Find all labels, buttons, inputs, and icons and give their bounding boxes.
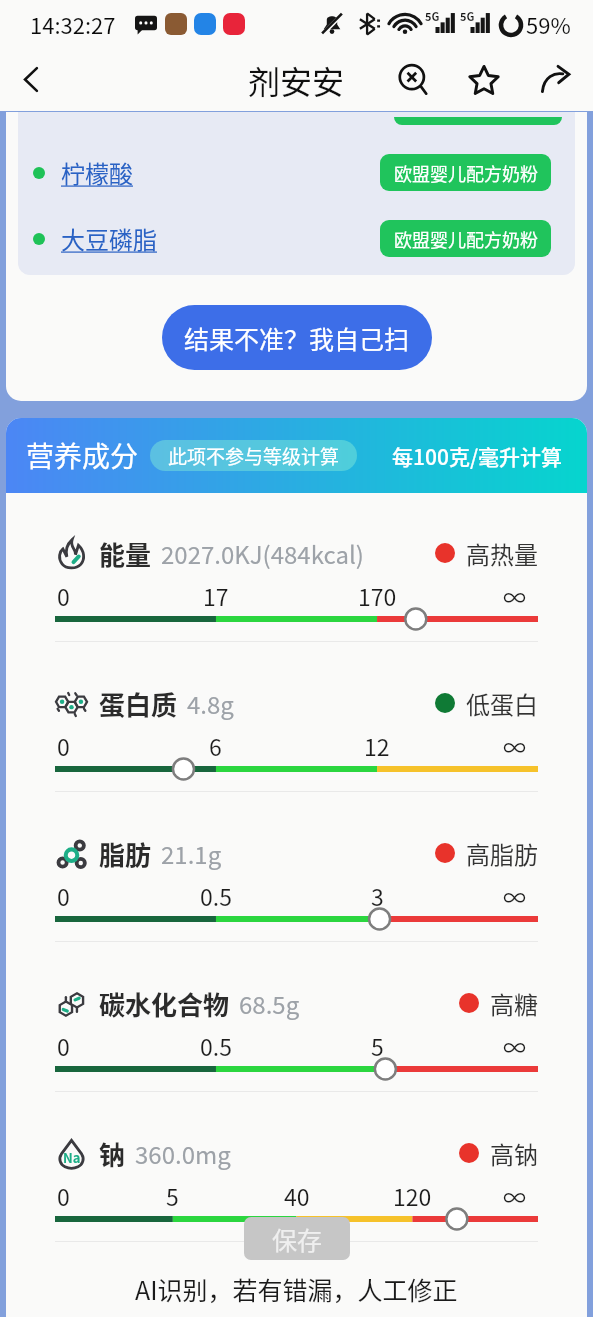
staticText: AI识别，若有错漏，人工修正 xyxy=(135,1271,458,1307)
staticText: 脂肪 xyxy=(99,835,152,871)
staticText: 营养成分 xyxy=(26,435,139,476)
staticText: 此项不参与等级计算 xyxy=(168,442,340,470)
staticText: 68.5g xyxy=(239,986,300,1021)
staticText: 结果不准？我自己扫 xyxy=(184,320,410,356)
staticText: 0 xyxy=(57,1029,70,1062)
button[interactable]: 欧盟婴儿配方奶粉 xyxy=(380,220,551,257)
staticText: 每100克/毫升计算 xyxy=(392,441,563,471)
staticText: 蛋白质 xyxy=(99,685,178,721)
staticText: 能量 xyxy=(99,535,152,571)
staticText: 120 xyxy=(393,1179,432,1212)
staticText: 4.8g xyxy=(187,686,234,721)
staticText: 碳水化合物 xyxy=(99,985,230,1021)
staticText: 40 xyxy=(284,1179,310,1212)
button[interactable]: Back xyxy=(0,48,63,111)
staticText: 欧盟婴儿配方奶粉 xyxy=(394,160,538,186)
staticText: 欧盟婴儿配方奶粉 xyxy=(394,226,538,252)
staticText: 柠檬酸 xyxy=(61,155,133,190)
staticText: 360.0mg xyxy=(135,1136,231,1171)
staticText: 5G xyxy=(460,8,475,24)
staticText: 0 xyxy=(57,1179,70,1212)
staticText: 59% xyxy=(526,8,571,40)
staticText: 12 xyxy=(364,729,390,762)
staticText: 高脂肪 xyxy=(466,836,538,871)
staticText: 5G xyxy=(425,8,440,24)
staticText: 0 xyxy=(57,729,70,762)
button[interactable]: Favorite xyxy=(455,51,513,109)
staticText: 14:32:27 xyxy=(30,8,116,40)
staticText: 6 xyxy=(209,729,222,762)
staticText: 大豆磷脂 xyxy=(61,221,157,256)
staticText: 170 xyxy=(358,579,397,612)
staticText: 0 xyxy=(57,879,70,912)
staticText: 0 xyxy=(57,579,70,612)
staticText: 21.1g xyxy=(161,836,222,871)
staticText: 钠 xyxy=(99,1135,126,1171)
staticText: 5 xyxy=(166,1179,179,1212)
staticText: 3 xyxy=(371,879,384,912)
staticText: 2027.0KJ(484kcal) xyxy=(161,536,364,571)
button[interactable]: 保存 xyxy=(244,1217,350,1260)
button[interactable]: 结果不准？我自己扫 xyxy=(162,305,432,370)
staticText: 0.5 xyxy=(200,1029,232,1062)
staticText: 17 xyxy=(203,579,229,612)
staticText: ∞ xyxy=(503,879,526,912)
staticText: ∞ xyxy=(503,1179,526,1212)
button[interactable]: Clear search xyxy=(385,51,443,109)
staticText: Na xyxy=(63,1148,81,1167)
button[interactable]: 欧盟婴儿配方奶粉 xyxy=(380,154,551,191)
staticText: 剂安安 xyxy=(248,57,345,103)
staticText: 低蛋白 xyxy=(466,686,538,721)
staticText: ∞ xyxy=(503,579,526,612)
staticText: ∞ xyxy=(503,1029,526,1062)
staticText: 保存 xyxy=(272,1221,323,1257)
staticText: 0.5 xyxy=(200,879,232,912)
staticText: 高热量 xyxy=(466,536,538,571)
button[interactable]: Share xyxy=(527,51,585,109)
staticText: 高钠 xyxy=(490,1136,538,1171)
staticText: ∞ xyxy=(503,729,526,762)
staticText: 5 xyxy=(371,1029,384,1062)
staticText: 高糖 xyxy=(490,986,538,1021)
